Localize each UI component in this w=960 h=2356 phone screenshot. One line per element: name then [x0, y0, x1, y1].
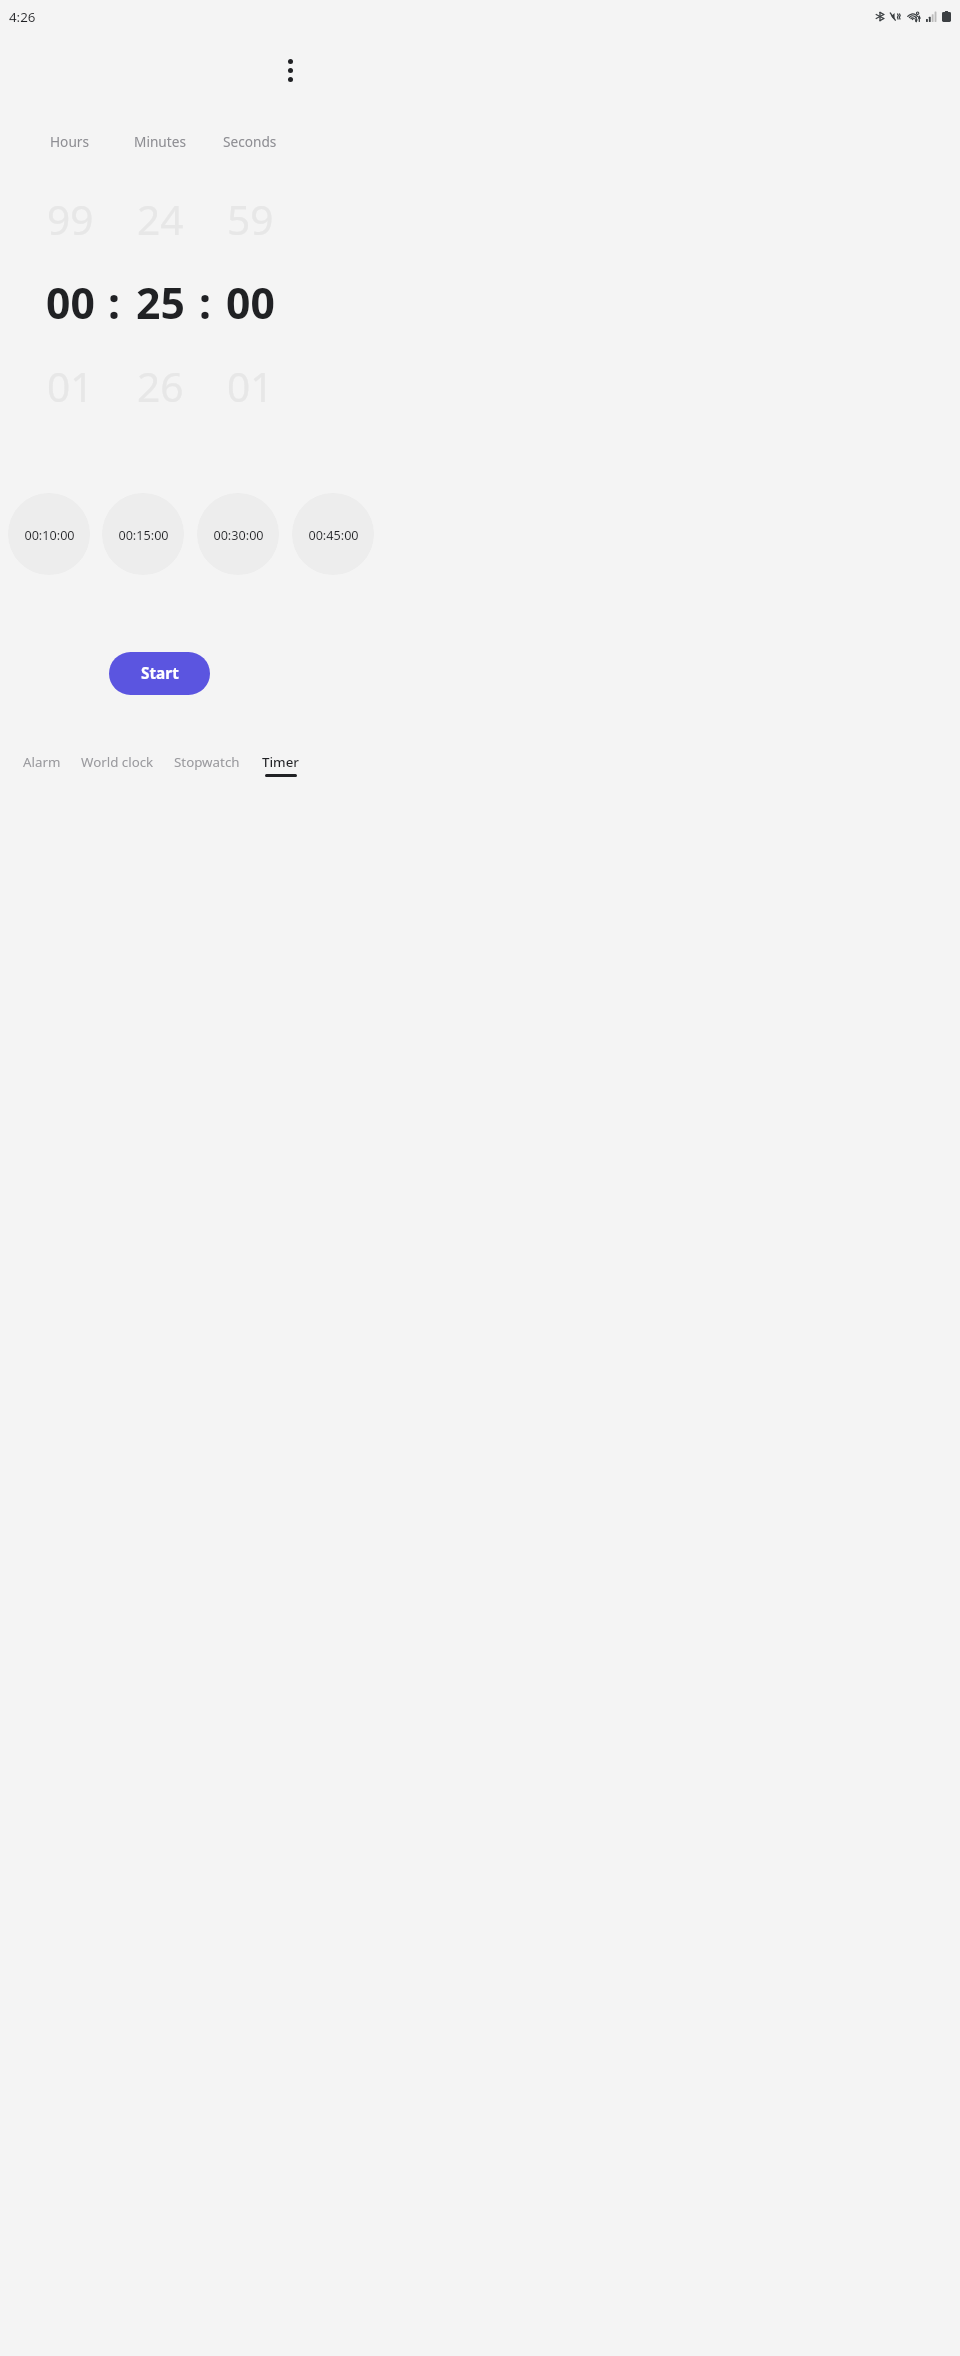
- staticText: 24: [137, 192, 184, 247]
- staticText: :: [199, 273, 211, 331]
- staticText: 01: [47, 359, 94, 414]
- button[interactable]: 00:10:00: [8, 493, 90, 575]
- staticText: 99: [47, 192, 94, 247]
- staticText: 59: [227, 192, 274, 247]
- staticText: 00:30:00: [213, 526, 264, 543]
- button[interactable]: 00:45:00: [292, 493, 374, 575]
- staticText: :: [108, 273, 120, 331]
- staticText: Start: [141, 663, 179, 684]
- staticText: 01: [227, 359, 274, 414]
- button[interactable]: World clock: [81, 747, 154, 784]
- button[interactable]: 00:30:00: [197, 493, 279, 575]
- staticText: 00:45:00: [308, 526, 359, 543]
- staticText: 4:26: [9, 8, 36, 26]
- staticText: Seconds: [223, 132, 277, 151]
- staticText: Minutes: [134, 132, 186, 151]
- staticText: Alarm: [23, 753, 61, 771]
- staticText: Hours: [50, 132, 90, 151]
- button[interactable]: Timer: [244, 747, 317, 784]
- button[interactable]: Alarm: [5, 747, 78, 784]
- staticText: Timer: [262, 753, 299, 771]
- staticText: Stopwatch: [174, 753, 240, 771]
- staticText: 00:10:00: [24, 526, 75, 543]
- staticText: 00: [46, 273, 95, 331]
- button[interactable]: Start: [109, 652, 210, 695]
- button[interactable]: More options: [273, 50, 308, 91]
- staticText: 00:15:00: [118, 526, 169, 543]
- staticText: 25: [136, 273, 185, 331]
- staticText: 00: [226, 273, 275, 331]
- staticText: World clock: [81, 753, 154, 771]
- button[interactable]: Stopwatch: [170, 747, 243, 784]
- button[interactable]: 00:15:00: [102, 493, 184, 575]
- staticText: 26: [137, 359, 184, 414]
